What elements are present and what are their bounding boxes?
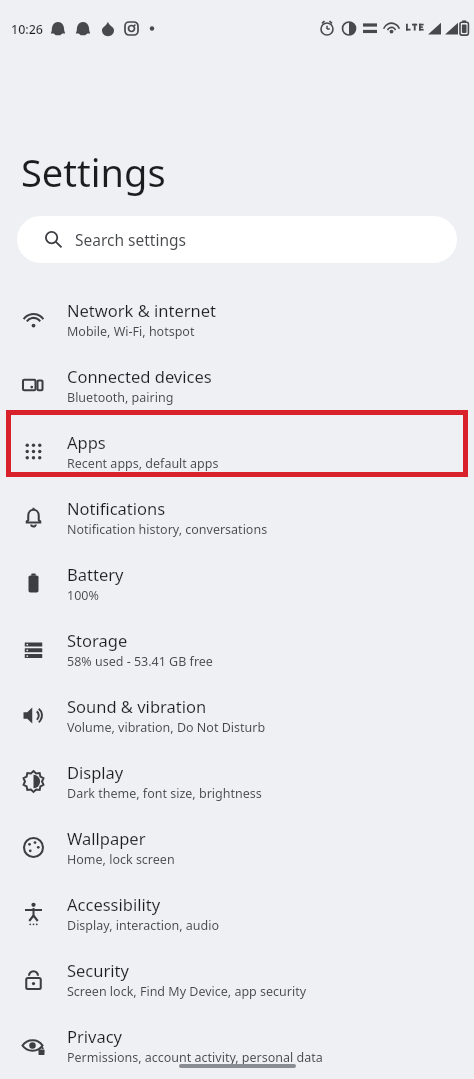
staticText: Volume, vibration, Do Not Disturb [67,719,266,736]
button[interactable]: Network & internet [0,286,474,352]
staticText: 58% used - 53.41 GB free [67,653,213,670]
staticText: Notifications [67,497,166,519]
staticText: Storage [67,629,128,651]
staticText: Dark theme, font size, brightness [67,785,262,802]
button[interactable]: Notifications [0,484,474,550]
staticText: Display, interaction, audio [67,917,220,934]
button[interactable]: Wallpaper [0,814,474,880]
staticText: Battery [67,563,124,585]
staticText: Security [67,959,129,981]
staticText: Permissions, account activity, personal … [67,1049,323,1066]
staticText: Wallpaper [67,827,146,849]
staticText: Home, lock screen [67,851,175,868]
staticText: 100% [67,587,99,604]
staticText: Bluetooth, pairing [67,389,174,406]
staticText: Connected devices [67,365,212,387]
button[interactable]: Search settings [17,216,457,263]
staticText: Sound & vibration [67,695,207,717]
button[interactable]: Sound & vibration [0,682,474,748]
button[interactable]: Apps [0,418,474,484]
staticText: Mobile, Wi-Fi, hotspot [67,323,195,340]
staticText: Apps [67,431,106,453]
staticText: 10:26 [11,21,44,38]
staticText: Notification history, conversations [67,521,268,538]
button[interactable]: Connected devices [0,352,474,418]
staticText: Display [67,761,124,783]
staticText: Recent apps, default apps [67,455,219,472]
button[interactable]: Display [0,748,474,814]
staticText: Network & internet [67,299,217,321]
button[interactable]: Storage [0,616,474,682]
staticText: Screen lock, Find My Device, app securit… [67,983,307,1000]
button[interactable]: Accessibility [0,880,474,946]
button[interactable]: Privacy [0,1012,474,1078]
staticText: Accessibility [67,893,161,915]
staticText: Settings [21,146,166,198]
button[interactable]: Battery [0,550,474,616]
staticText: Search settings [75,229,186,250]
button[interactable]: Security [0,946,474,1012]
staticText: Privacy [67,1025,123,1047]
